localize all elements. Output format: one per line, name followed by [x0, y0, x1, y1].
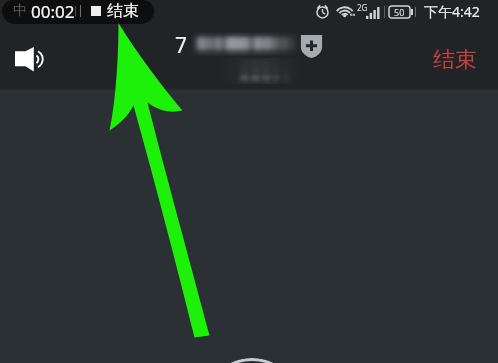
staticText: 2G	[357, 2, 368, 13]
staticText: 00:02	[31, 0, 75, 23]
staticText: 中	[13, 2, 27, 20]
staticText: 下午4:42	[424, 2, 480, 21]
staticText: 7	[175, 31, 188, 60]
button[interactable]: Speaker	[3, 35, 55, 83]
staticText: 结束	[433, 46, 477, 74]
staticText: 结束	[107, 1, 139, 21]
staticText: 50	[394, 6, 405, 18]
button[interactable]: End call	[201, 358, 303, 363]
button[interactable]: 结束	[433, 46, 477, 74]
button[interactable]: Call in progress 00:02	[2, 0, 154, 24]
